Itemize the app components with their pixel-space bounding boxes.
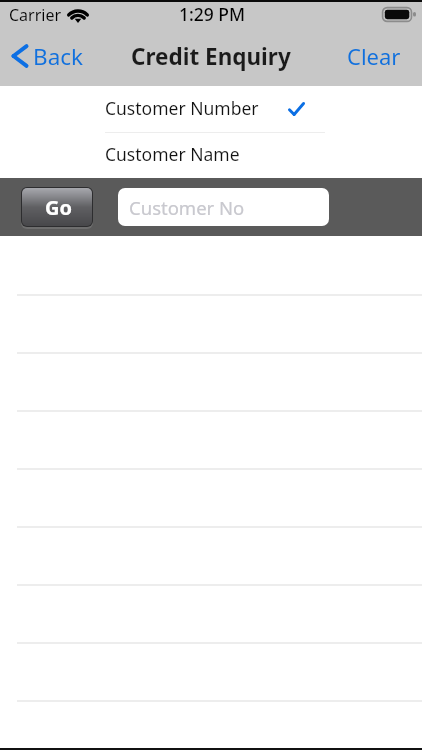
- button[interactable]: [0, 238, 422, 296]
- staticText: 1:29 PM: [179, 2, 246, 26]
- button[interactable]: [0, 702, 422, 750]
- button[interactable]: Clear: [347, 34, 401, 78]
- staticText: Go: [45, 194, 72, 221]
- other: Selected: [288, 102, 305, 116]
- button[interactable]: Customer Number: [0, 86, 422, 132]
- staticText: Customer No: [129, 195, 245, 220]
- staticText: Credit Enquiry: [131, 41, 291, 72]
- button[interactable]: [0, 644, 422, 702]
- button[interactable]: Back: [11, 34, 84, 78]
- button[interactable]: Customer No: [118, 188, 329, 226]
- button[interactable]: [0, 296, 422, 354]
- button[interactable]: [0, 586, 422, 644]
- other: Wi-Fi: [68, 9, 88, 23]
- staticText: Clear: [347, 41, 401, 71]
- button[interactable]: [0, 528, 422, 586]
- staticText: Back: [33, 41, 84, 72]
- staticText: Customer Number: [105, 96, 259, 120]
- button[interactable]: [0, 354, 422, 412]
- button[interactable]: [0, 470, 422, 528]
- staticText: Carrier: [9, 4, 62, 26]
- button[interactable]: Customer Name: [0, 133, 422, 178]
- button[interactable]: [0, 412, 422, 470]
- button[interactable]: Go: [21, 186, 94, 229]
- other: Battery: [382, 7, 416, 22]
- staticText: Customer Name: [105, 142, 240, 166]
